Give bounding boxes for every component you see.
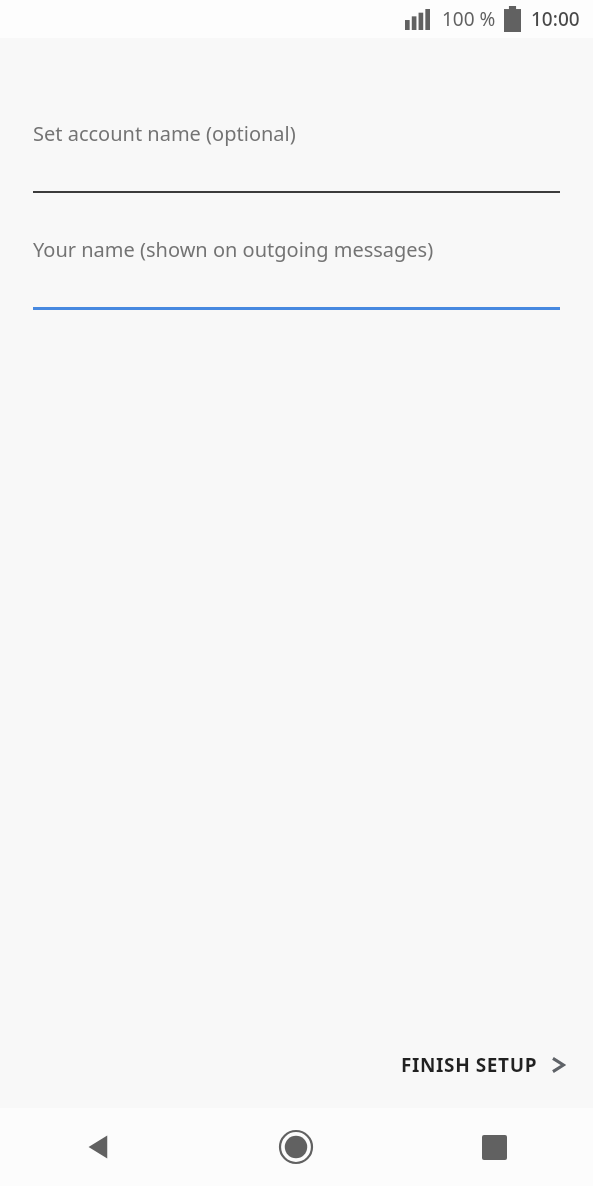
button[interactable]: FINISH SETUP: [383, 1040, 585, 1090]
staticText: 100 %: [442, 6, 496, 32]
staticText: FINISH SETUP: [401, 1052, 538, 1078]
button[interactable]: Your name (shown on outgoing messages): [33, 236, 560, 310]
staticText: 10:00: [531, 6, 580, 32]
staticText: Set account name (optional): [33, 120, 296, 147]
staticText: Your name (shown on outgoing messages): [33, 236, 434, 263]
button[interactable]: Home: [197, 1108, 395, 1186]
button[interactable]: Set account name (optional): [33, 120, 560, 193]
button[interactable]: Back: [0, 1108, 197, 1186]
button[interactable]: Recent apps: [395, 1108, 593, 1186]
